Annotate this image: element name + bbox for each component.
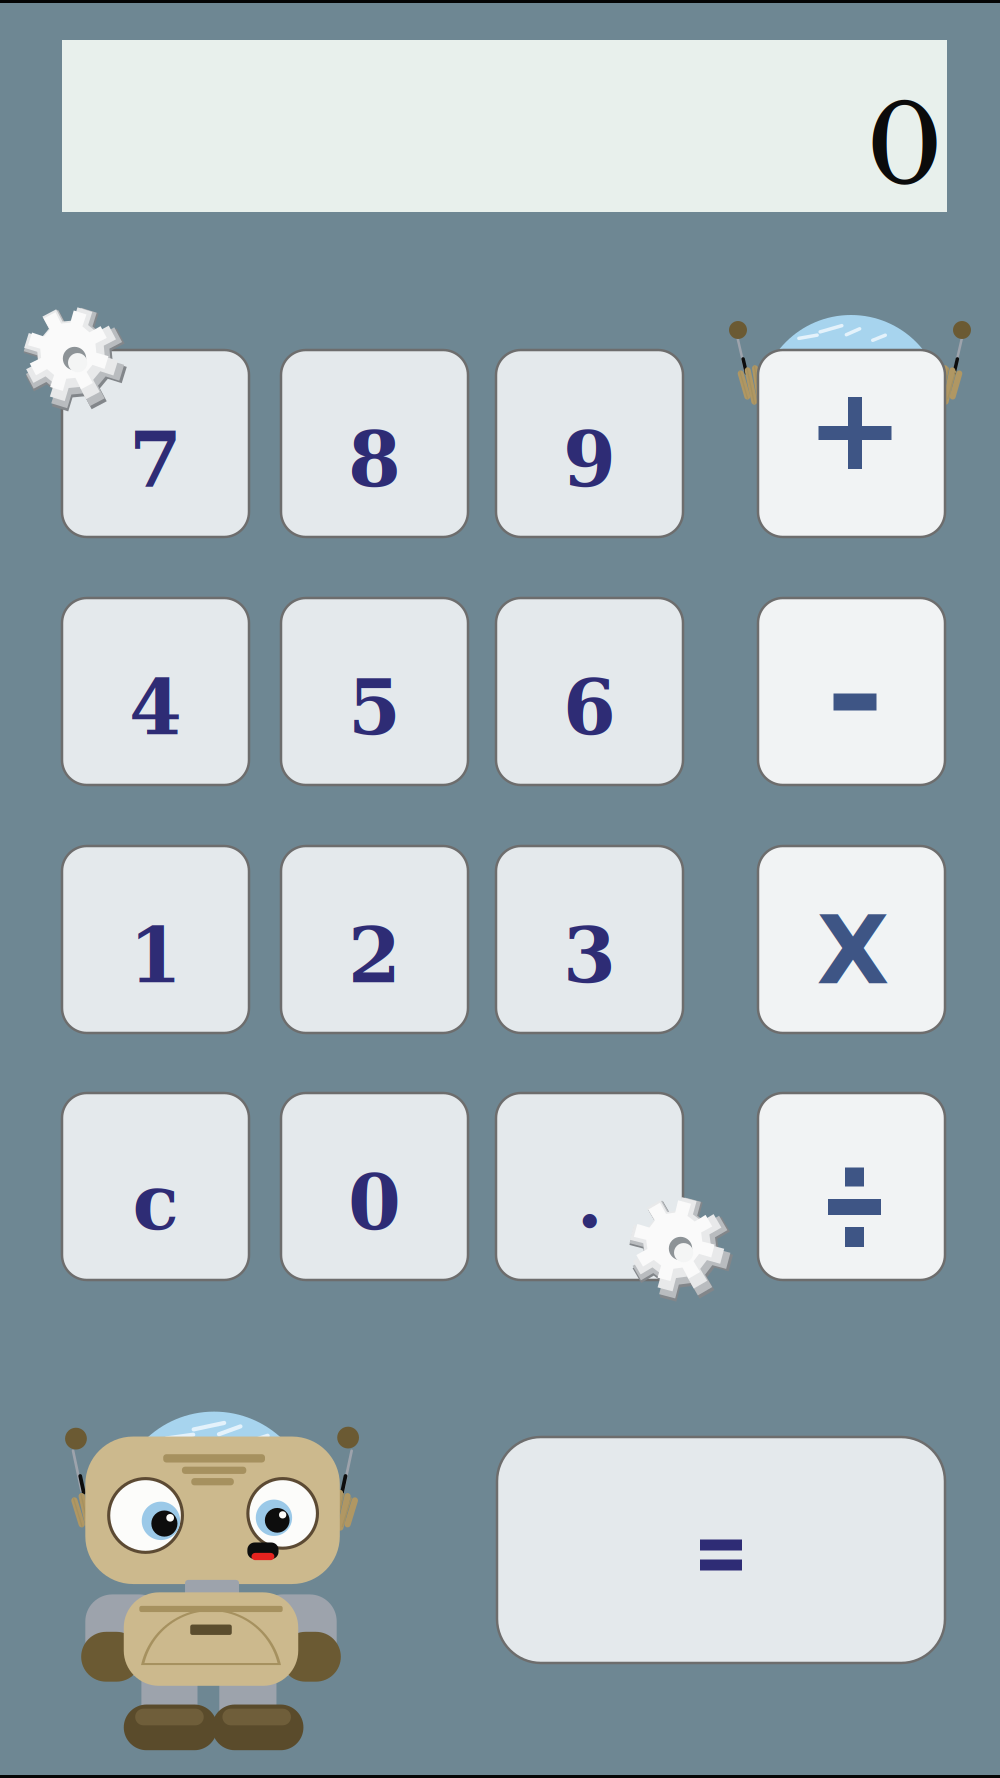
- button[interactable]: 6: [496, 598, 683, 785]
- button[interactable]: 3: [496, 846, 683, 1033]
- staticText: 2: [348, 911, 401, 1000]
- button[interactable]: 1: [62, 846, 249, 1033]
- button[interactable]: .: [496, 1093, 683, 1280]
- button[interactable]: Equals: [497, 1437, 945, 1663]
- staticText: 0: [866, 79, 943, 213]
- button[interactable]: 7: [62, 350, 249, 537]
- button[interactable]: 4: [62, 598, 249, 785]
- button[interactable]: Subtract: [758, 598, 945, 785]
- staticText: 1: [129, 911, 182, 1000]
- staticText: 5: [348, 663, 401, 752]
- button[interactable]: Multiply: [758, 846, 945, 1033]
- button[interactable]: 8: [281, 350, 468, 537]
- button[interactable]: Divide: [758, 1093, 945, 1280]
- button[interactable]: 9: [496, 350, 683, 537]
- staticText: 9: [563, 415, 616, 504]
- staticText: X: [816, 895, 889, 1006]
- staticText: 3: [563, 911, 616, 1000]
- button[interactable]: Add: [758, 350, 945, 537]
- staticText: 7: [129, 415, 182, 504]
- staticText: 0: [348, 1158, 401, 1247]
- staticText: 6: [563, 663, 616, 752]
- button[interactable]: c: [62, 1093, 249, 1280]
- staticText: 8: [348, 415, 401, 504]
- button[interactable]: 0: [281, 1093, 468, 1280]
- staticText: 4: [129, 663, 182, 752]
- staticText: .: [576, 1156, 602, 1245]
- staticText: c: [132, 1158, 178, 1247]
- button[interactable]: 2: [281, 846, 468, 1033]
- button[interactable]: 5: [281, 598, 468, 785]
